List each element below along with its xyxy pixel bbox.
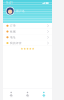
staticText: 用户名 [16, 9, 25, 13]
button[interactable]: 我的 [36, 89, 52, 99]
button[interactable]: 我的评价 [3, 40, 52, 46]
staticText: 收藏 [10, 30, 16, 33]
staticText: 9:41 [6, 1, 13, 5]
button[interactable]: 发现 [19, 89, 36, 99]
staticText: 我的评价 [10, 41, 22, 45]
staticText: 我的 [43, 96, 45, 97]
staticText: 发现 [26, 96, 28, 97]
button[interactable]: 订单 [3, 23, 52, 28]
staticText: 地址 [10, 36, 16, 39]
staticText: 首页 [10, 96, 12, 97]
button[interactable]: 收藏 [3, 29, 52, 34]
staticText: 订单 [10, 24, 16, 27]
button[interactable]: 首页 [3, 89, 19, 99]
button[interactable]: 地址 [3, 34, 52, 40]
